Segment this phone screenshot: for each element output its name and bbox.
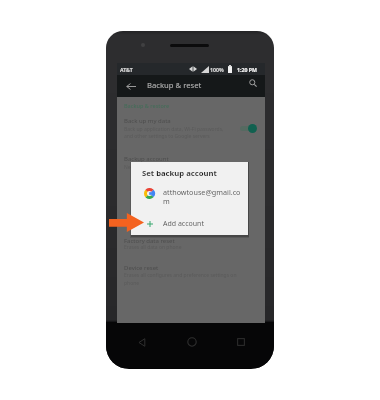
staticText: Set backup account [142,168,217,178]
button[interactable]: Add account [131,216,248,231]
button[interactable]: Back [117,330,167,354]
staticText: Backup & restore [124,102,170,109]
staticText: 100% [210,66,224,73]
button[interactable]: Back up my data toggle [240,126,254,131]
button[interactable]: Recent apps [216,330,265,354]
staticText: atthowtouse@gmail.com [163,187,243,206]
staticText: Add account [163,219,204,229]
button[interactable]: Back [122,75,139,97]
staticText: Back up my data [124,117,171,125]
button[interactable]: Home [167,330,216,354]
staticText: AT&T [120,66,133,73]
staticText: Backup & reset [147,80,202,90]
staticText: Device reset [124,264,159,272]
staticText: Backup account [124,155,169,163]
button[interactable]: Search [245,75,261,91]
staticText: Need to set backup account [124,164,190,171]
button[interactable]: atthowtouse@gmail.com [131,187,248,211]
staticText: 1:20 PM [237,66,257,73]
staticText: Factory data reset [124,237,175,245]
